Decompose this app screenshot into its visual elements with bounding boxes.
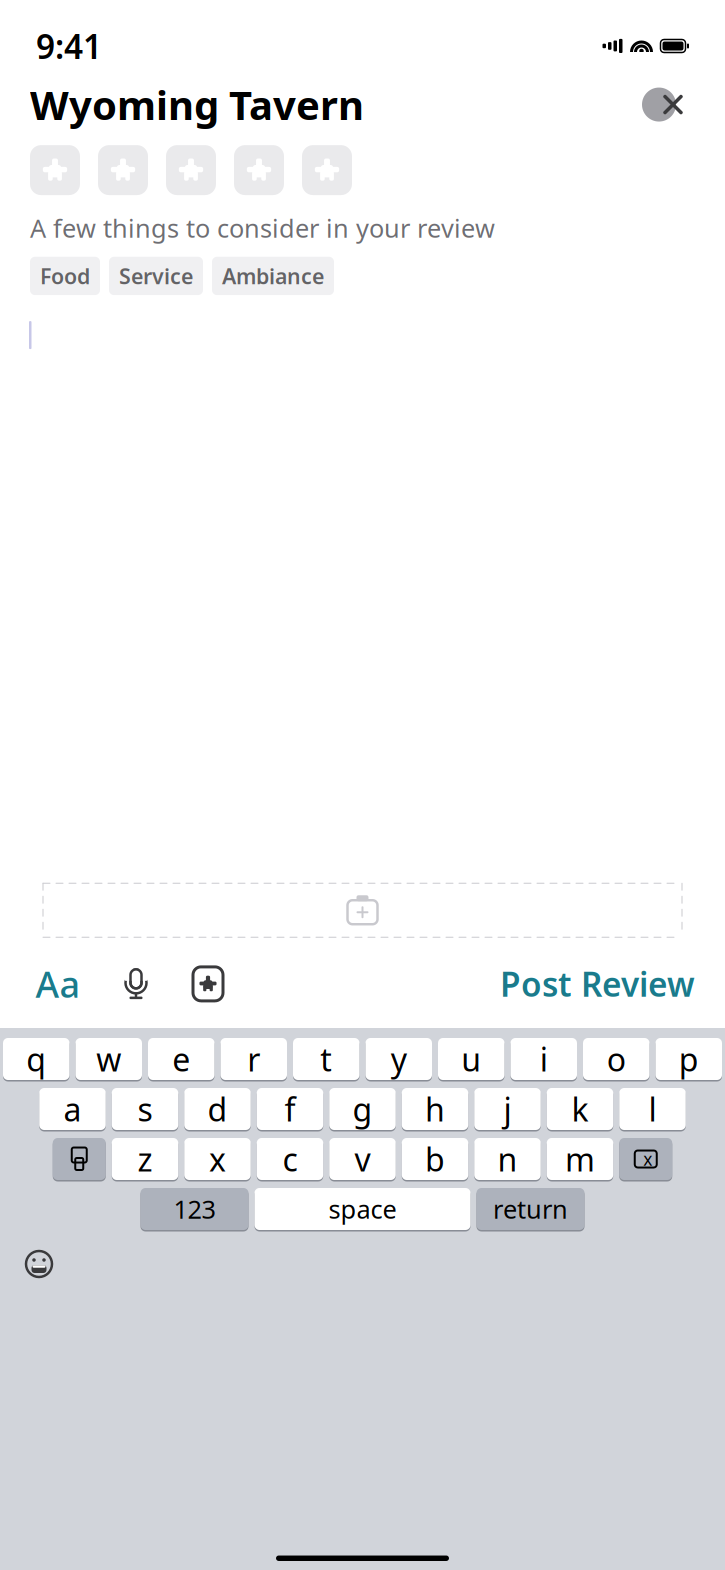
button[interactable]: Food xyxy=(30,257,100,295)
button[interactable]: n xyxy=(474,1137,541,1181)
staticText: Food xyxy=(40,262,90,290)
staticText: k xyxy=(571,1088,588,1130)
staticText: f xyxy=(284,1088,295,1130)
button[interactable]: x xyxy=(184,1137,251,1181)
staticText: return xyxy=(493,1192,568,1226)
button[interactable]: r xyxy=(220,1037,287,1081)
button[interactable]: Dictate xyxy=(108,960,164,1008)
button[interactable]: g xyxy=(329,1087,396,1131)
button[interactable]: Add rating xyxy=(184,960,232,1008)
button[interactable]: b xyxy=(402,1137,468,1181)
button[interactable]: Post Review xyxy=(500,954,695,1014)
staticText: g xyxy=(352,1088,372,1130)
staticText: 9:41 xyxy=(36,24,102,68)
button[interactable]: Rate 5 star xyxy=(302,145,352,195)
staticText: e xyxy=(172,1038,190,1080)
staticText: l xyxy=(648,1088,656,1130)
button[interactable]: Service xyxy=(109,257,203,295)
staticText: t xyxy=(320,1038,332,1080)
button[interactable]: p xyxy=(655,1037,722,1081)
button[interactable]: Close xyxy=(639,83,695,127)
staticText: y xyxy=(391,1038,407,1080)
button[interactable]: c xyxy=(257,1137,323,1181)
staticText: Post Review xyxy=(500,962,695,1006)
staticText: 123 xyxy=(173,1192,215,1226)
staticText: space xyxy=(328,1192,396,1226)
button[interactable]: i xyxy=(510,1037,577,1081)
button[interactable]: v xyxy=(329,1137,396,1181)
staticText: r xyxy=(247,1038,260,1080)
staticText: i xyxy=(540,1038,548,1080)
staticText: b xyxy=(425,1138,445,1180)
button[interactable]: z xyxy=(112,1137,178,1181)
staticText: x xyxy=(209,1138,226,1180)
button[interactable]: Shift xyxy=(53,1137,106,1181)
button[interactable]: s xyxy=(112,1087,178,1131)
staticText: x xyxy=(643,1147,652,1170)
button[interactable]: w xyxy=(75,1037,142,1081)
button[interactable]: u xyxy=(438,1037,504,1081)
button[interactable]: Rate 2 star xyxy=(98,145,148,195)
staticText: s xyxy=(137,1088,152,1130)
staticText: v xyxy=(354,1138,370,1180)
button[interactable]: Emoji xyxy=(0,1243,54,1285)
button[interactable]: f xyxy=(257,1087,323,1131)
staticText: n xyxy=(497,1138,517,1180)
button[interactable]: k xyxy=(547,1087,613,1131)
button[interactable]: j xyxy=(474,1087,541,1131)
button[interactable]: l xyxy=(619,1087,686,1131)
staticText: A few things to consider in your review xyxy=(30,211,495,245)
staticText: Ambiance xyxy=(222,262,324,290)
button[interactable]: y xyxy=(365,1037,432,1081)
staticText: q xyxy=(26,1038,46,1080)
staticText: p xyxy=(679,1038,699,1080)
staticText: a xyxy=(63,1088,81,1130)
button[interactable]: return xyxy=(476,1187,584,1231)
staticText: m xyxy=(565,1138,595,1180)
staticText: c xyxy=(282,1138,297,1180)
staticText: o xyxy=(607,1038,626,1080)
staticText: Service xyxy=(119,262,193,290)
staticText: Wyoming Tavern xyxy=(30,78,364,131)
staticText: w xyxy=(96,1038,121,1080)
staticText: h xyxy=(425,1088,445,1130)
button[interactable]: e xyxy=(148,1037,214,1081)
staticText: u xyxy=(461,1038,481,1080)
button[interactable]: Delete xyxy=(619,1137,672,1181)
button[interactable]: Rate 1 star xyxy=(30,145,80,195)
button[interactable]: Ambiance xyxy=(212,257,334,295)
button[interactable]: Rate 3 star xyxy=(166,145,216,195)
staticText: Aa xyxy=(35,960,80,1008)
button[interactable]: Rate 4 star xyxy=(234,145,284,195)
button[interactable]: space xyxy=(254,1187,470,1231)
button[interactable]: o xyxy=(583,1037,649,1081)
staticText: j xyxy=(503,1088,511,1130)
button[interactable]: m xyxy=(547,1137,613,1181)
button[interactable]: q xyxy=(3,1037,69,1081)
button[interactable]: Text formatting xyxy=(30,960,86,1008)
button[interactable]: t xyxy=(293,1037,359,1081)
button[interactable]: h xyxy=(402,1087,468,1131)
staticText: d xyxy=(207,1088,227,1130)
button[interactable]: d xyxy=(184,1087,251,1131)
button[interactable]: 123 xyxy=(140,1187,248,1231)
button[interactable]: a xyxy=(39,1087,106,1131)
staticText: z xyxy=(137,1138,152,1180)
